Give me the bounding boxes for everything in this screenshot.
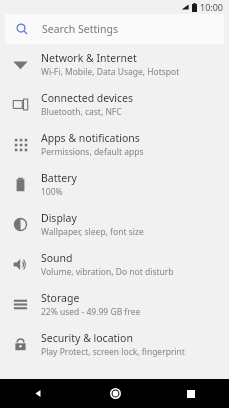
staticText: Wallpaper, sleep, font size [41, 226, 144, 238]
button[interactable]: Battery [0, 164, 229, 204]
button[interactable]: Apps & notifications [0, 124, 229, 164]
button[interactable]: Back [0, 379, 77, 408]
staticText: Battery [41, 171, 77, 185]
button[interactable]: Storage [0, 284, 229, 324]
staticText: Connected devices [41, 91, 134, 105]
button[interactable]: Search Settings [5, 14, 224, 44]
staticText: 10:00 [200, 1, 224, 13]
button[interactable]: Recent apps [153, 379, 229, 408]
staticText: 100% [41, 186, 63, 198]
staticText: Sound [41, 251, 73, 265]
staticText: Security & location [41, 331, 133, 345]
staticText: Volume, vibration, Do not disturb [41, 266, 174, 278]
button[interactable]: Sound [0, 244, 229, 284]
button[interactable]: Display [0, 204, 229, 244]
staticText: Display [41, 211, 77, 225]
staticText: 22% used - 49.99 GB free [41, 306, 141, 318]
staticText: Play Protect, screen lock, fingerprint [41, 346, 185, 358]
button[interactable]: Home [77, 379, 153, 408]
staticText: Network & Internet [41, 51, 137, 65]
button[interactable]: Connected devices [0, 84, 229, 124]
staticText: Search Settings [42, 22, 118, 36]
staticText: Apps & notifications [41, 131, 140, 145]
button[interactable]: Network & Internet [0, 44, 229, 84]
staticText: Wi-Fi, Mobile, Data Usage, Hotspot [41, 66, 180, 78]
button[interactable]: Security & location [0, 324, 229, 364]
staticText: Permissions, default apps [41, 146, 144, 158]
staticText: Storage [41, 291, 80, 305]
staticText: Bluetooth, cast, NFC [41, 106, 122, 118]
